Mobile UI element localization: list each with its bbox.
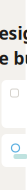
staticText: esign — [0, 21, 27, 44]
staticText: e bui — [0, 46, 27, 69]
